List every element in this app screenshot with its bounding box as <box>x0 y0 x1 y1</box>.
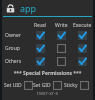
staticText: Sticky <box>64 82 78 89</box>
button[interactable]: Sticky <box>62 80 91 90</box>
staticText: *** Special Permissions *** <box>2 70 93 77</box>
button[interactable]: Group <box>2 42 93 55</box>
staticText: Write <box>55 22 68 29</box>
button[interactable]: Group read <box>36 44 45 53</box>
button[interactable]: Set GID <box>33 80 62 90</box>
button[interactable]: Owner read <box>36 31 45 40</box>
button[interactable]: Set GID <box>53 81 62 90</box>
staticText: Set UID <box>4 82 22 89</box>
staticText: Set GID <box>33 82 51 89</box>
button[interactable]: Group write <box>57 44 66 53</box>
staticText: Read <box>34 22 46 29</box>
button[interactable]: Owner <box>2 29 93 42</box>
staticText: Execute <box>73 22 92 29</box>
staticText: app <box>20 2 37 14</box>
button[interactable]: Owner write <box>57 31 66 40</box>
other: File permissions <box>5 3 16 14</box>
button[interactable]: Others <box>2 55 93 68</box>
button[interactable]: Set UID <box>24 81 33 90</box>
button[interactable]: Sticky <box>80 81 89 90</box>
staticText: Group <box>5 45 20 52</box>
button[interactable]: Others execute <box>78 57 87 66</box>
button[interactable]: Owner execute <box>78 31 87 40</box>
staticText: Others <box>5 58 22 65</box>
staticText: rwxr-xr-x <box>2 90 93 97</box>
button[interactable]: Group execute <box>78 44 87 53</box>
button[interactable]: Others read <box>36 57 45 66</box>
button[interactable]: Others write <box>57 57 66 66</box>
button[interactable]: Set UID <box>4 80 33 90</box>
staticText: Owner <box>5 32 21 39</box>
